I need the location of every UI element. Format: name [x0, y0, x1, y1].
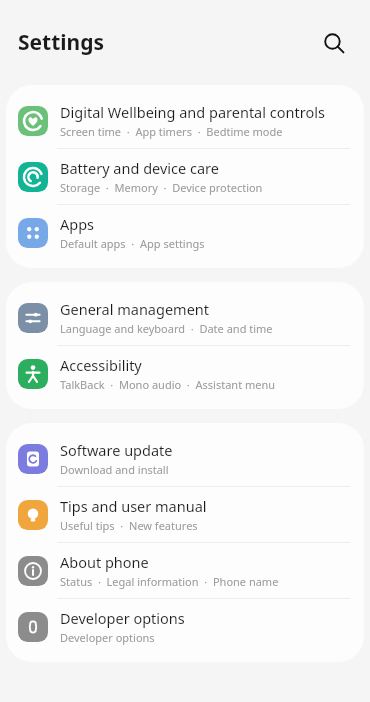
staticText: Software update [60, 440, 173, 460]
staticText: Apps [60, 214, 95, 234]
staticText: Developer options [60, 608, 185, 628]
button[interactable]: Search [316, 25, 352, 61]
staticText: Battery and device care [60, 158, 219, 178]
staticText: Developer options [60, 630, 155, 645]
button[interactable]: Tips and user manual [6, 487, 364, 542]
staticText: Status · Legal information · Phone name [60, 574, 279, 589]
staticText: General management [60, 299, 210, 319]
staticText: Digital Wellbeing and parental controls [60, 102, 325, 122]
button[interactable]: Battery and device care [6, 149, 364, 204]
staticText: Default apps · App settings [60, 236, 205, 251]
button[interactable]: Accessibility [6, 346, 364, 401]
button[interactable]: Developer options [6, 599, 364, 654]
staticText: TalkBack · Mono audio · Assistant menu [60, 377, 276, 392]
staticText: Settings [18, 28, 105, 57]
staticText: Tips and user manual [60, 496, 207, 516]
staticText: Storage · Memory · Device protection [60, 180, 263, 195]
button[interactable]: General management [6, 290, 364, 345]
staticText: About phone [60, 552, 149, 572]
button[interactable]: Software update [6, 431, 364, 486]
button[interactable]: Apps [6, 205, 364, 260]
button[interactable]: Digital Wellbeing and parental controls [6, 93, 364, 148]
staticText: Download and install [60, 462, 169, 477]
staticText: Accessibility [60, 355, 142, 375]
button[interactable]: About phone [6, 543, 364, 598]
staticText: Screen time · App timers · Bedtime mode [60, 124, 283, 139]
staticText: Useful tips · New features [60, 518, 198, 533]
staticText: Language and keyboard · Date and time [60, 321, 273, 336]
